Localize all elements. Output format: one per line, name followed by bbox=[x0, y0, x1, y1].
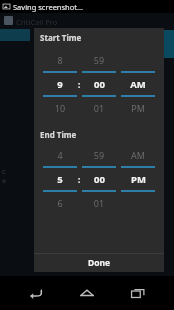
staticText: 9 bbox=[57, 78, 63, 91]
button[interactable]: 00 bbox=[82, 77, 116, 91]
button[interactable]: 9 bbox=[43, 77, 77, 91]
staticText: 01 bbox=[82, 102, 116, 114]
button[interactable]: 00 bbox=[82, 172, 116, 186]
staticText: AM bbox=[130, 78, 146, 91]
staticText: : bbox=[78, 79, 81, 90]
staticText: 00 bbox=[94, 173, 105, 186]
staticText: End Time bbox=[40, 129, 77, 140]
button[interactable]: Home bbox=[72, 278, 102, 308]
staticText: 8 bbox=[43, 54, 77, 66]
staticText: 59 bbox=[82, 54, 116, 66]
staticText: 6 bbox=[43, 197, 77, 209]
staticText: 4 bbox=[43, 149, 77, 161]
button[interactable]: Done bbox=[34, 254, 164, 272]
staticText: AM bbox=[121, 149, 155, 161]
staticText: 01 bbox=[82, 197, 116, 209]
button[interactable]: Recent apps bbox=[123, 278, 153, 308]
button[interactable]: 5 bbox=[43, 172, 77, 186]
button[interactable]: AM bbox=[121, 77, 155, 91]
staticText: PM bbox=[121, 102, 155, 114]
staticText: 5 bbox=[57, 173, 63, 186]
staticText: Start Time bbox=[40, 32, 82, 43]
staticText: C bbox=[2, 168, 6, 176]
button[interactable]: Back bbox=[21, 278, 51, 308]
button[interactable]: PM bbox=[121, 172, 155, 186]
staticText: 10 bbox=[43, 102, 77, 114]
staticText: Done bbox=[88, 257, 111, 269]
staticText: d bbox=[2, 177, 6, 185]
staticText: : bbox=[78, 174, 81, 185]
staticText: CritiCall Pro bbox=[16, 17, 58, 27]
staticText: Saving screenshot... bbox=[13, 2, 84, 12]
staticText: 00 bbox=[94, 78, 105, 91]
staticText: 59 bbox=[82, 149, 116, 161]
staticText: PM bbox=[131, 173, 146, 186]
